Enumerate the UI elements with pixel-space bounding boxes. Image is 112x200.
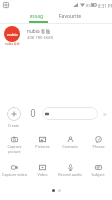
staticText: Video xyxy=(37,172,48,177)
button[interactable]: Send message xyxy=(101,110,109,118)
button[interactable]: Create message xyxy=(7,107,21,128)
staticText: Capture xyxy=(7,144,22,149)
staticText: Capture video xyxy=(2,172,27,177)
staticText: nubia 客服 xyxy=(27,28,51,34)
staticText: nubia 客服 xyxy=(5,42,20,46)
button[interactable]: Capture xyxy=(0,134,28,160)
button[interactable]: Attach file xyxy=(28,108,38,118)
staticText: Favourite xyxy=(59,13,82,20)
staticText: picture xyxy=(8,149,21,154)
button[interactable]: Phrase xyxy=(84,134,112,160)
staticText: nubia xyxy=(7,32,18,37)
staticText: Pictures xyxy=(35,144,50,149)
staticText: Subject xyxy=(91,172,105,177)
button[interactable] xyxy=(42,107,98,120)
button[interactable]: Subject xyxy=(84,162,112,188)
staticText: Record audio xyxy=(58,172,82,177)
button[interactable]: Video xyxy=(28,162,56,188)
staticText: Phrase xyxy=(92,144,105,149)
button[interactable]: Messaging xyxy=(30,12,48,21)
button[interactable]: Favourite xyxy=(59,12,89,21)
staticText: 85 xyxy=(86,3,91,9)
button[interactable]: Contacts xyxy=(56,134,84,160)
button[interactable]: Pictures xyxy=(28,134,56,160)
button[interactable]: nubia xyxy=(0,24,112,48)
button[interactable]: Record audio xyxy=(56,162,84,188)
button[interactable]: Capture video xyxy=(0,162,28,188)
staticText: 408 780 6680 xyxy=(27,35,54,41)
staticText: Create xyxy=(8,123,20,128)
staticText: Messaging xyxy=(30,13,43,20)
staticText: Contacts xyxy=(62,144,78,149)
staticText: 8:31 PM xyxy=(98,3,112,9)
